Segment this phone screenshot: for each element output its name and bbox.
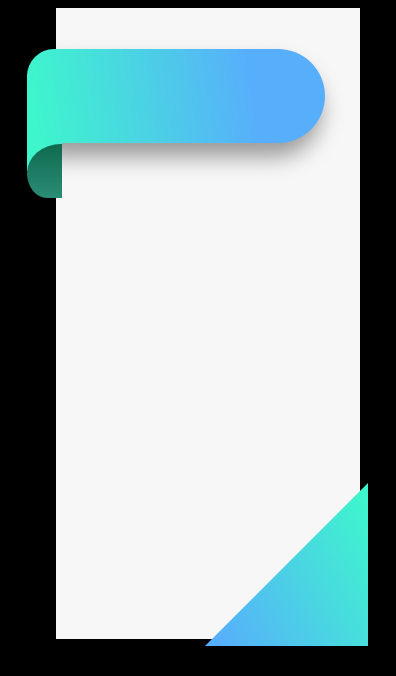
- button[interactable]: Ribbon banner artwork: [0, 0, 396, 676]
